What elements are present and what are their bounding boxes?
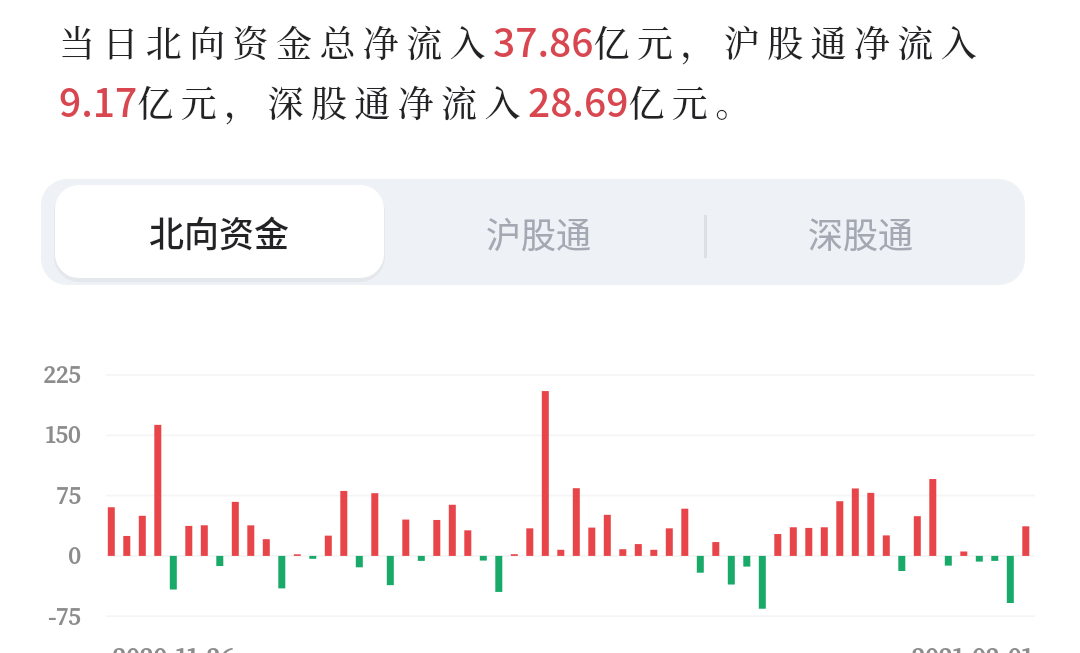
button[interactable]: 沪股通	[379, 179, 699, 285]
button[interactable]: 深股通	[702, 179, 1020, 285]
staticText: 深股通	[808, 207, 914, 258]
staticText: 2020-11-26	[112, 639, 234, 653]
staticText: -75	[48, 600, 81, 632]
staticText: 2021-02-01	[911, 639, 1033, 653]
staticText: 北向资金	[149, 206, 290, 257]
staticText: 150	[45, 418, 81, 450]
button[interactable]: 北向资金	[55, 185, 384, 278]
staticText: 沪股通	[486, 207, 592, 258]
staticText: 当日北向资金总净流入37.86亿元，沪股通净流入9.17亿元，深股通净流入28.…	[59, 12, 1004, 128]
button[interactable]: Northbound capital flow bar chart	[0, 330, 1080, 653]
staticText: 75	[56, 479, 81, 511]
staticText: 225	[43, 358, 81, 390]
staticText: 0	[68, 539, 81, 571]
